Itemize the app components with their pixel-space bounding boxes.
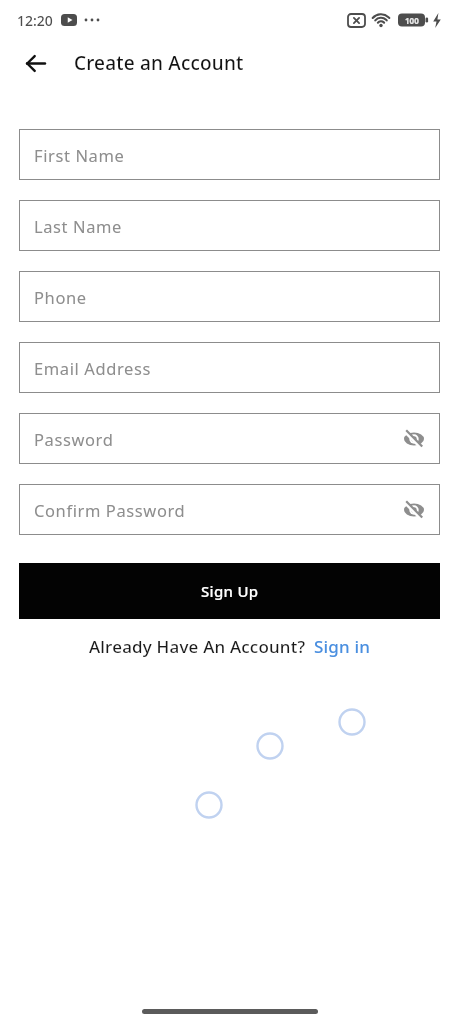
- staticText: Password: [34, 428, 114, 450]
- button[interactable]: Password: [19, 413, 440, 464]
- staticText: Create an Account: [74, 50, 244, 76]
- button[interactable]: Sign Up: [19, 563, 440, 619]
- button[interactable]: Email Address: [19, 342, 440, 393]
- staticText: Sign Up: [201, 581, 259, 601]
- button[interactable]: Last Name: [19, 200, 440, 251]
- button[interactable]: First Name: [19, 129, 440, 180]
- staticText: 100: [405, 15, 419, 26]
- staticText: Email Address: [34, 357, 151, 379]
- staticText: 12:20: [17, 11, 53, 30]
- staticText: Already Have An Account?: [89, 635, 306, 658]
- button[interactable]: Confirm Password: [19, 484, 440, 535]
- staticText: Confirm Password: [34, 499, 186, 521]
- staticText: Last Name: [34, 215, 122, 237]
- button[interactable]: [16, 43, 56, 83]
- staticText: First Name: [34, 144, 125, 166]
- button[interactable]: Sign in: [314, 635, 371, 658]
- staticText: Phone: [34, 286, 87, 308]
- button[interactable]: Phone: [19, 271, 440, 322]
